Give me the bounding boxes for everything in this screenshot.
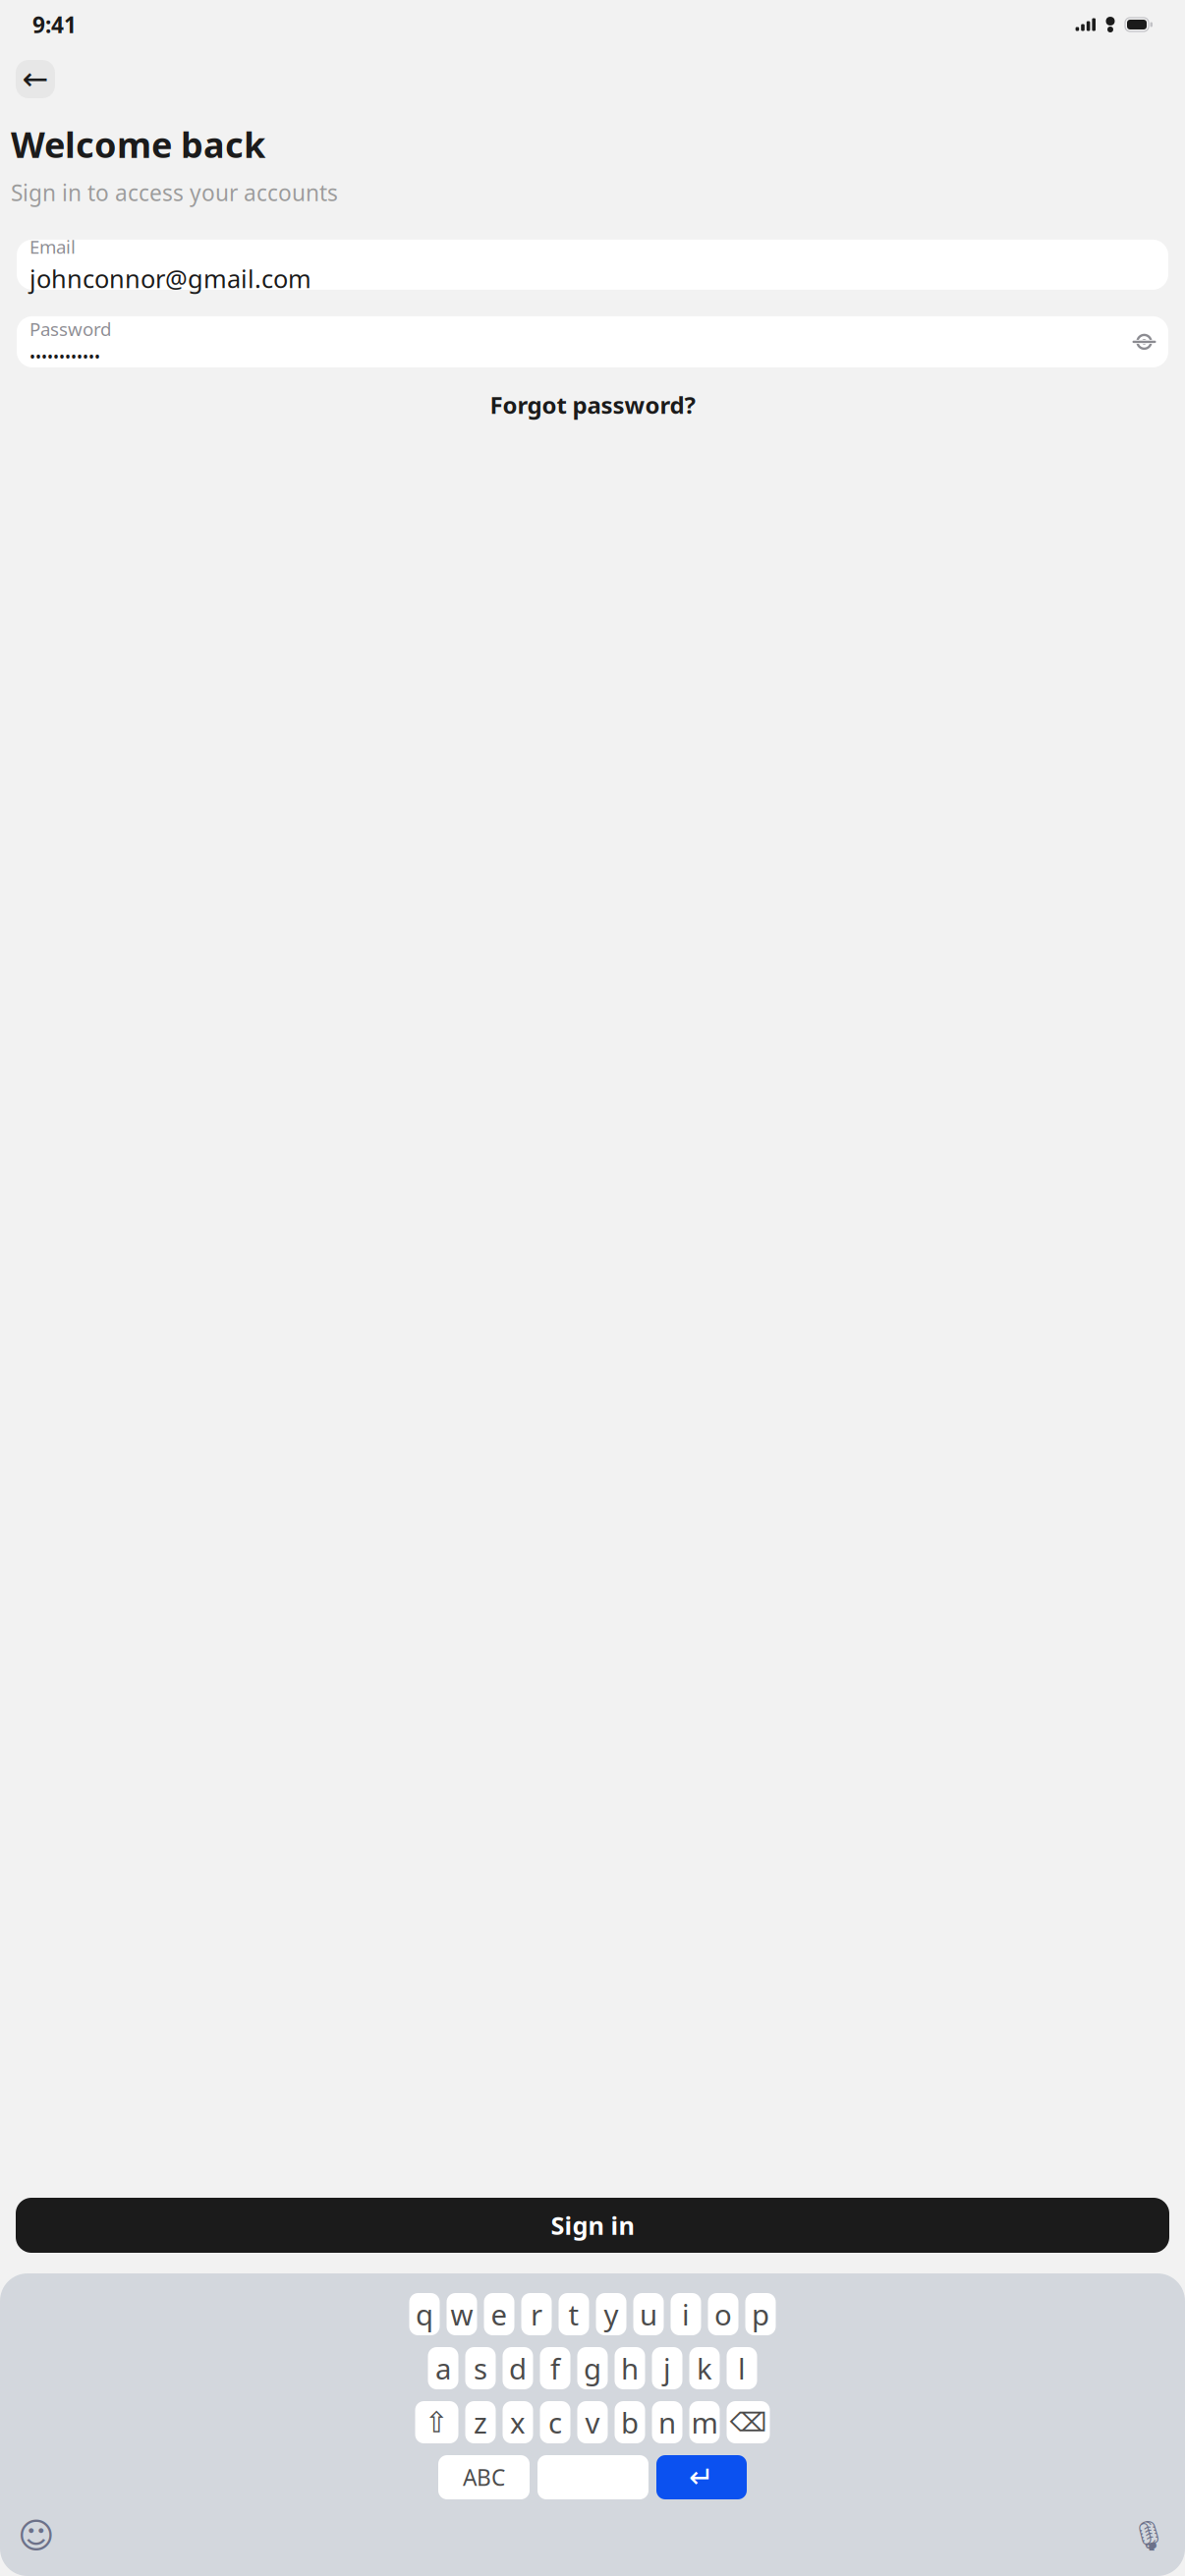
button[interactable]: Shift bbox=[415, 2401, 458, 2443]
button[interactable]: k bbox=[689, 2347, 720, 2389]
button[interactable]: n bbox=[652, 2401, 682, 2443]
button[interactable]: Back bbox=[16, 60, 55, 98]
button[interactable]: x bbox=[503, 2401, 533, 2443]
button[interactable]: i bbox=[671, 2293, 701, 2335]
button[interactable]: g bbox=[577, 2347, 608, 2389]
button[interactable]: ABC bbox=[438, 2455, 530, 2499]
staticText: o bbox=[714, 2295, 732, 2333]
button[interactable]: q bbox=[409, 2293, 440, 2335]
button[interactable]: l bbox=[727, 2347, 757, 2389]
staticText: Sign in bbox=[551, 2209, 634, 2242]
button[interactable]: y bbox=[596, 2293, 626, 2335]
staticText: e bbox=[491, 2295, 508, 2333]
staticText: i bbox=[682, 2295, 690, 2333]
button[interactable]: s bbox=[465, 2347, 496, 2389]
button[interactable]: o bbox=[708, 2293, 738, 2335]
staticText: ⇧ bbox=[424, 2406, 449, 2439]
staticText: ⌫ bbox=[730, 2407, 767, 2437]
button[interactable]: h bbox=[615, 2347, 645, 2389]
staticText: ↵ bbox=[689, 2460, 714, 2494]
button[interactable]: t bbox=[559, 2293, 589, 2335]
staticText: u bbox=[640, 2295, 657, 2333]
staticText: d bbox=[509, 2349, 527, 2387]
button[interactable]: Sign in bbox=[16, 2198, 1169, 2253]
staticText: Email bbox=[29, 235, 76, 259]
staticText: c bbox=[548, 2403, 562, 2441]
button[interactable]: b bbox=[615, 2401, 645, 2443]
button[interactable]: Space bbox=[537, 2455, 649, 2499]
button[interactable]: Emoji bbox=[18, 2519, 55, 2552]
button[interactable]: u bbox=[633, 2293, 664, 2335]
button[interactable]: c bbox=[540, 2401, 570, 2443]
staticText: Sign in to access your accounts bbox=[11, 178, 338, 207]
button[interactable]: Email bbox=[17, 240, 1168, 290]
staticText: 🎙 bbox=[1130, 2519, 1167, 2552]
staticText: Password bbox=[29, 317, 111, 341]
staticText: z bbox=[474, 2403, 487, 2441]
button[interactable]: Delete bbox=[727, 2401, 770, 2443]
staticText: p bbox=[752, 2295, 769, 2333]
staticText: q bbox=[416, 2295, 433, 2333]
button[interactable]: z bbox=[465, 2401, 496, 2443]
button[interactable]: e bbox=[484, 2293, 514, 2335]
button[interactable]: m bbox=[689, 2401, 720, 2443]
staticText: ABC bbox=[463, 2462, 505, 2492]
staticText: h bbox=[621, 2349, 639, 2387]
staticText: r bbox=[531, 2295, 542, 2333]
button[interactable]: a bbox=[428, 2347, 458, 2389]
staticText: y bbox=[604, 2295, 619, 2333]
staticText: l bbox=[738, 2349, 746, 2387]
staticText: v bbox=[585, 2403, 600, 2441]
button[interactable]: Password bbox=[17, 316, 1168, 367]
staticText: Forgot password? bbox=[490, 389, 695, 420]
staticText: 9:41 bbox=[32, 10, 77, 39]
button[interactable]: Forgot password? bbox=[476, 381, 709, 428]
staticText: f bbox=[550, 2349, 560, 2387]
staticText: j bbox=[663, 2349, 671, 2387]
button[interactable]: j bbox=[652, 2347, 682, 2389]
staticText: t bbox=[568, 2295, 579, 2333]
staticText: n bbox=[658, 2403, 676, 2441]
staticText: g bbox=[584, 2349, 601, 2387]
staticText: b bbox=[621, 2403, 639, 2441]
staticText: a bbox=[435, 2349, 451, 2387]
staticText: m bbox=[691, 2403, 718, 2441]
button[interactable]: p bbox=[745, 2293, 776, 2335]
staticText: Welcome back bbox=[11, 121, 265, 168]
button[interactable]: w bbox=[447, 2293, 477, 2335]
staticText: x bbox=[510, 2403, 526, 2441]
staticText: k bbox=[697, 2349, 712, 2387]
staticText: ☺ bbox=[18, 2516, 55, 2556]
button[interactable]: Return bbox=[656, 2455, 747, 2499]
button[interactable]: r bbox=[521, 2293, 552, 2335]
staticText: ← bbox=[22, 61, 49, 97]
button[interactable]: f bbox=[540, 2347, 570, 2389]
button[interactable]: d bbox=[503, 2347, 533, 2389]
staticText: johnconnor@gmail.com bbox=[29, 262, 311, 295]
button[interactable]: Dictation bbox=[1130, 2519, 1167, 2552]
staticText: •••••••••••• bbox=[29, 346, 100, 367]
staticText: s bbox=[474, 2349, 487, 2387]
button[interactable]: v bbox=[577, 2401, 608, 2443]
staticText: w bbox=[451, 2295, 473, 2333]
